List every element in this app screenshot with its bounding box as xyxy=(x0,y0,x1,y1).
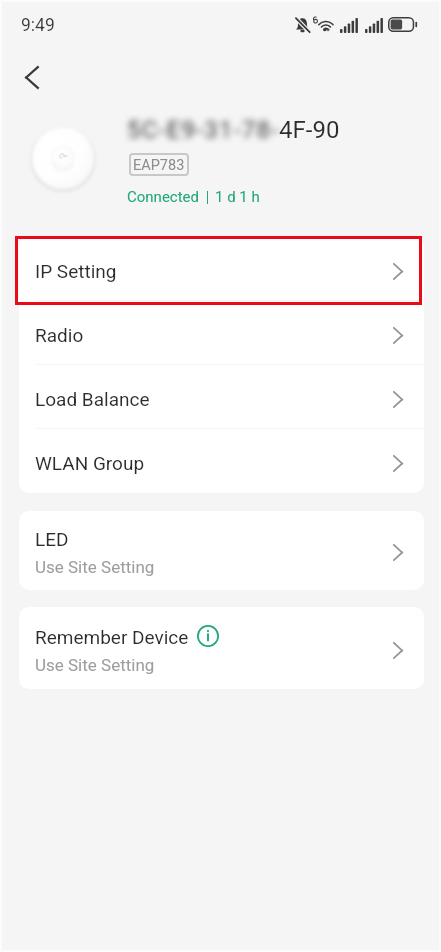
staticText: EAP783 xyxy=(133,157,185,174)
button[interactable]: WLAN Group xyxy=(19,429,424,493)
staticText: 5C-E9-31-78- xyxy=(127,116,280,144)
button[interactable]: Back xyxy=(10,56,53,99)
staticText: 9:49 xyxy=(21,15,55,36)
staticText: Use Site Setting xyxy=(35,557,155,577)
staticText: WLAN Group xyxy=(35,452,145,474)
button[interactable]: Radio xyxy=(19,301,424,365)
staticText: IP Setting xyxy=(35,260,117,282)
staticText: Remember Device xyxy=(35,626,189,648)
staticText: Connected xyxy=(127,188,200,206)
staticText: 1 d 1 h xyxy=(215,188,260,206)
button[interactable]: IP Setting xyxy=(19,237,424,301)
button[interactable]: Remember Device xyxy=(19,607,424,689)
staticText: 4F-90 xyxy=(279,116,340,144)
button[interactable]: Load Balance xyxy=(19,365,424,429)
staticText: Load Balance xyxy=(35,388,150,410)
staticText: LED xyxy=(35,528,69,550)
staticText: Use Site Setting xyxy=(35,655,155,675)
staticText: Radio xyxy=(35,324,84,346)
button[interactable]: LED xyxy=(19,511,424,590)
